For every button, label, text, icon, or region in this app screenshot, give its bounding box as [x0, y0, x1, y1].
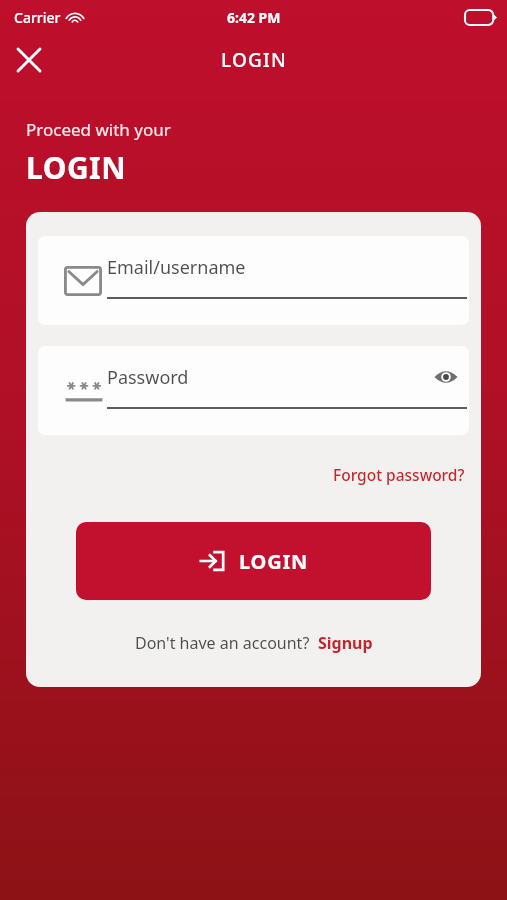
- staticText: Don't have an account?: [135, 632, 310, 654]
- button[interactable]: Forgot password?: [26, 464, 465, 485]
- staticText: Password: [107, 365, 189, 390]
- staticText: Carrier: [14, 8, 61, 27]
- staticText: LOGIN: [26, 147, 127, 188]
- other: Password: [64, 375, 104, 407]
- button[interactable]: Show password: [425, 346, 467, 408]
- staticText: Email/username: [107, 255, 246, 280]
- button[interactable]: LOGIN: [76, 522, 431, 600]
- staticText: 6:42 PM: [227, 8, 281, 27]
- staticText: Signup: [318, 632, 373, 654]
- button[interactable]: Close: [0, 34, 58, 86]
- button[interactable]: Password: [38, 346, 469, 435]
- button[interactable]: Email: [38, 236, 469, 325]
- other: Email: [64, 266, 102, 296]
- staticText: Forgot password?: [333, 464, 465, 485]
- staticText: LOGIN: [239, 548, 309, 575]
- button[interactable]: Signup: [318, 632, 373, 654]
- staticText: LOGIN: [221, 47, 287, 73]
- staticText: Proceed with your: [26, 118, 171, 141]
